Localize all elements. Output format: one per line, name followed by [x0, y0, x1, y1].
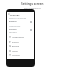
staticText: Settings — [10, 13, 20, 16]
staticText: English — [9, 20, 17, 23]
button[interactable]: Account — [9, 53, 32, 57]
staticText: Privacy — [12, 41, 19, 44]
staticText: APPEARANCE — [9, 25, 21, 27]
staticText: About — [12, 50, 18, 53]
staticText: GENERAL — [9, 31, 17, 33]
staticText: Backup — [12, 45, 19, 48]
staticText: Settings screen — [21, 2, 44, 6]
button[interactable]: Back — [8, 13, 10, 15]
staticText: app preferences — [24, 7, 41, 10]
button[interactable]: About — [9, 49, 32, 53]
staticText: Notifications — [12, 36, 24, 39]
button[interactable]: Notifications — [9, 35, 32, 39]
button[interactable]: Backup — [9, 44, 32, 48]
staticText: Account — [12, 54, 20, 57]
staticText: DISPLAY LANGUAGE — [9, 17, 26, 19]
staticText: System — [9, 28, 17, 31]
button[interactable]: APPEARANCE — [7, 25, 34, 32]
button[interactable]: Privacy — [9, 40, 32, 44]
button[interactable]: DISPLAY LANGUAGE — [7, 17, 34, 24]
